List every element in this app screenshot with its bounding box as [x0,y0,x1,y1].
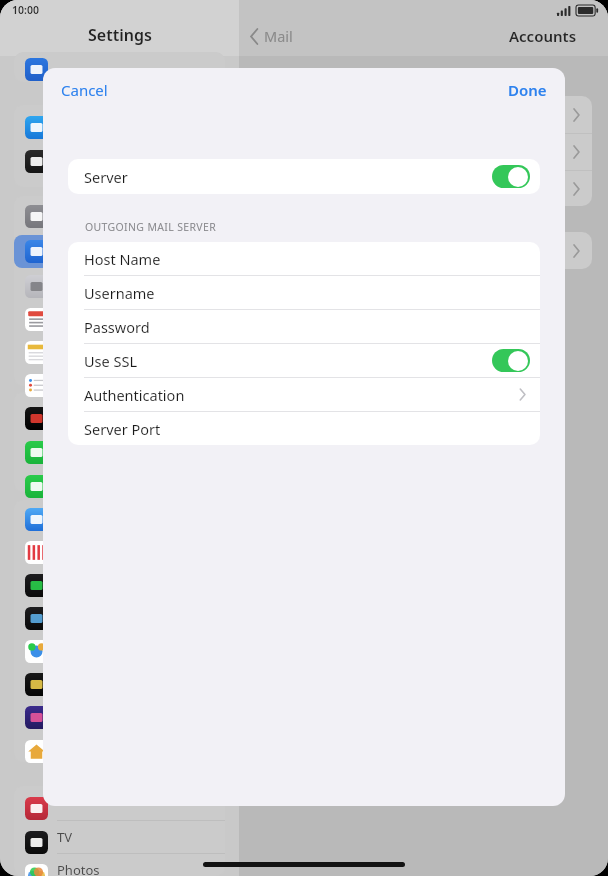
button[interactable] [25,706,48,729]
staticText: Password [84,317,150,337]
staticText: 10:00 [12,3,39,17]
button[interactable] [25,441,48,464]
staticText: Accounts [509,26,577,46]
button[interactable] [255,232,592,269]
button[interactable] [25,240,48,263]
button[interactable] [255,170,592,207]
staticText: Done [508,80,547,100]
button[interactable] [25,275,48,298]
button[interactable] [25,374,48,397]
button[interactable]: Server [68,159,540,194]
button[interactable] [25,607,48,630]
button[interactable]: Cancel [53,75,116,105]
button[interactable] [25,475,48,498]
staticText: TV [57,828,73,846]
staticText: Server [84,167,128,187]
button[interactable] [25,541,48,564]
button[interactable] [25,116,48,139]
button[interactable]: Toggle on [492,165,530,188]
staticText: Mail [264,26,293,46]
button[interactable] [255,133,592,170]
button[interactable]: Host Name [68,242,540,275]
button[interactable] [25,308,48,331]
staticText: OUTGOING MAIL SERVER [85,220,217,234]
button[interactable]: Username [68,276,540,309]
button[interactable] [25,864,48,876]
button[interactable] [255,96,592,133]
button[interactable] [25,673,48,696]
button[interactable] [25,150,48,173]
button[interactable] [25,797,48,820]
button[interactable]: Server Port [68,412,540,445]
button[interactable]: Toggle on [492,349,530,372]
button[interactable]: Authentication [68,378,540,411]
staticText: Username [84,283,155,303]
button[interactable]: Password [68,310,540,343]
button[interactable]: Mail [248,24,295,48]
button[interactable] [25,740,48,763]
button[interactable]: Done [500,75,555,105]
button[interactable] [25,205,48,228]
staticText: Use SSL [84,351,138,371]
button[interactable] [25,58,48,81]
staticText: Authentication [84,385,185,405]
staticText: Host Name [84,249,161,269]
staticText: Photos [57,861,100,876]
button[interactable]: Use SSL [68,344,540,377]
button[interactable] [25,640,48,663]
button[interactable] [25,574,48,597]
button[interactable] [25,508,48,531]
button[interactable] [25,341,48,364]
staticText: Settings [88,24,152,46]
button[interactable] [25,407,48,430]
staticText: Cancel [61,80,108,100]
button[interactable] [25,831,48,854]
staticText: Server Port [84,419,161,439]
